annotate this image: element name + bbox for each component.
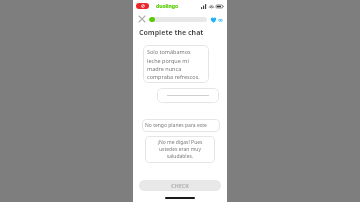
button[interactable]: Fill in the blank bbox=[157, 88, 219, 103]
button[interactable]: Close lesson bbox=[137, 14, 147, 24]
staticText: Complete the chat bbox=[139, 28, 204, 38]
staticText: CHECK bbox=[171, 182, 190, 189]
staticText: No tengo planes para este domingo. bbox=[145, 122, 217, 129]
button[interactable]: CHECK bbox=[139, 180, 221, 191]
staticText: Solo tomábamos leche porque mi madre nun… bbox=[147, 48, 205, 80]
button[interactable]: Hearts: unlimited bbox=[210, 16, 223, 23]
staticText: ¡No me digas! Pues ustedes eran muy salu… bbox=[149, 139, 211, 160]
staticText: ∞ bbox=[218, 16, 223, 23]
staticText: duolingo bbox=[156, 3, 179, 10]
